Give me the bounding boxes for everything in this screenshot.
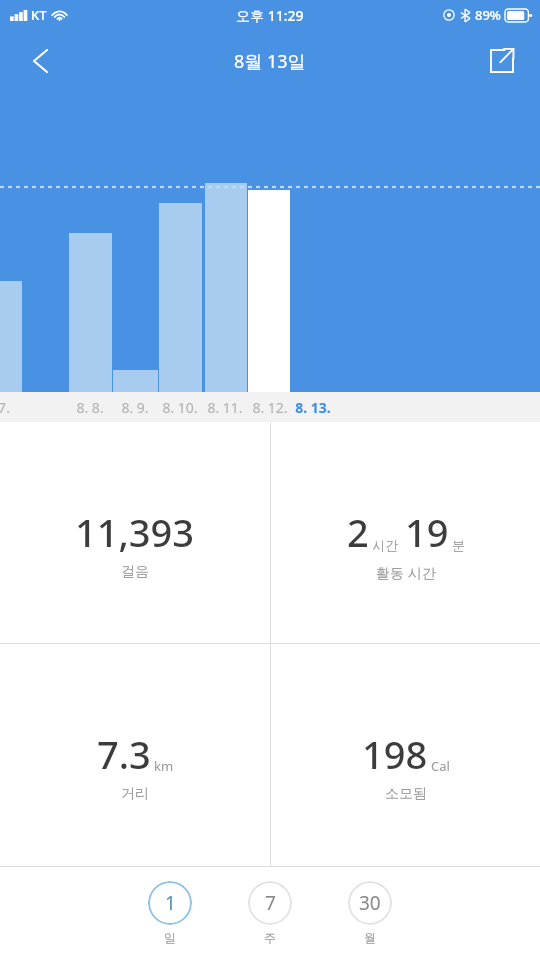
staticText: 8. 9. (121, 398, 149, 417)
button[interactable]: 11,393 (0, 422, 270, 643)
staticText: 8월 13일 (234, 49, 306, 74)
staticText: km (154, 757, 174, 775)
staticText: 8. 11. (207, 398, 243, 417)
staticText: 주 (264, 930, 276, 945)
button[interactable]: Share (480, 39, 524, 83)
button[interactable]: 2 (271, 422, 540, 643)
button[interactable]: 7 (248, 881, 292, 945)
staticText: 30 (359, 890, 381, 916)
staticText: 8. 13. (295, 398, 331, 417)
button[interactable]: 7.3 (0, 644, 270, 866)
staticText: 월 (364, 930, 376, 945)
staticText: 89% (475, 6, 501, 24)
button[interactable]: Back (18, 39, 62, 83)
staticText: 8. 10. (162, 398, 198, 417)
staticText: 8. 8. (76, 398, 104, 417)
staticText: 활동 시간 (376, 563, 436, 582)
button[interactable]: 198 (271, 644, 540, 866)
staticText: 일 (164, 930, 176, 945)
button[interactable]: 1 (148, 881, 192, 945)
staticText: 분 (452, 537, 465, 553)
button[interactable]: 30 (348, 881, 392, 945)
staticText: Cal (431, 757, 450, 775)
staticText: 7.3 (97, 728, 151, 780)
staticText: 7 (265, 890, 276, 916)
staticText: 11,393 (75, 506, 195, 558)
staticText: 1 (165, 890, 176, 916)
staticText: 오후 11:29 (236, 6, 304, 25)
staticText: 걸음 (121, 563, 149, 581)
staticText: 198 (362, 728, 428, 780)
staticText: KT (31, 6, 47, 24)
staticText: 거리 (121, 785, 149, 803)
staticText: 19 (405, 506, 449, 558)
staticText: 시간 (372, 537, 398, 553)
staticText: 7. (0, 398, 10, 417)
staticText: 2 (347, 506, 369, 558)
staticText: 소모됨 (385, 785, 427, 803)
staticText: 8. 12. (252, 398, 288, 417)
